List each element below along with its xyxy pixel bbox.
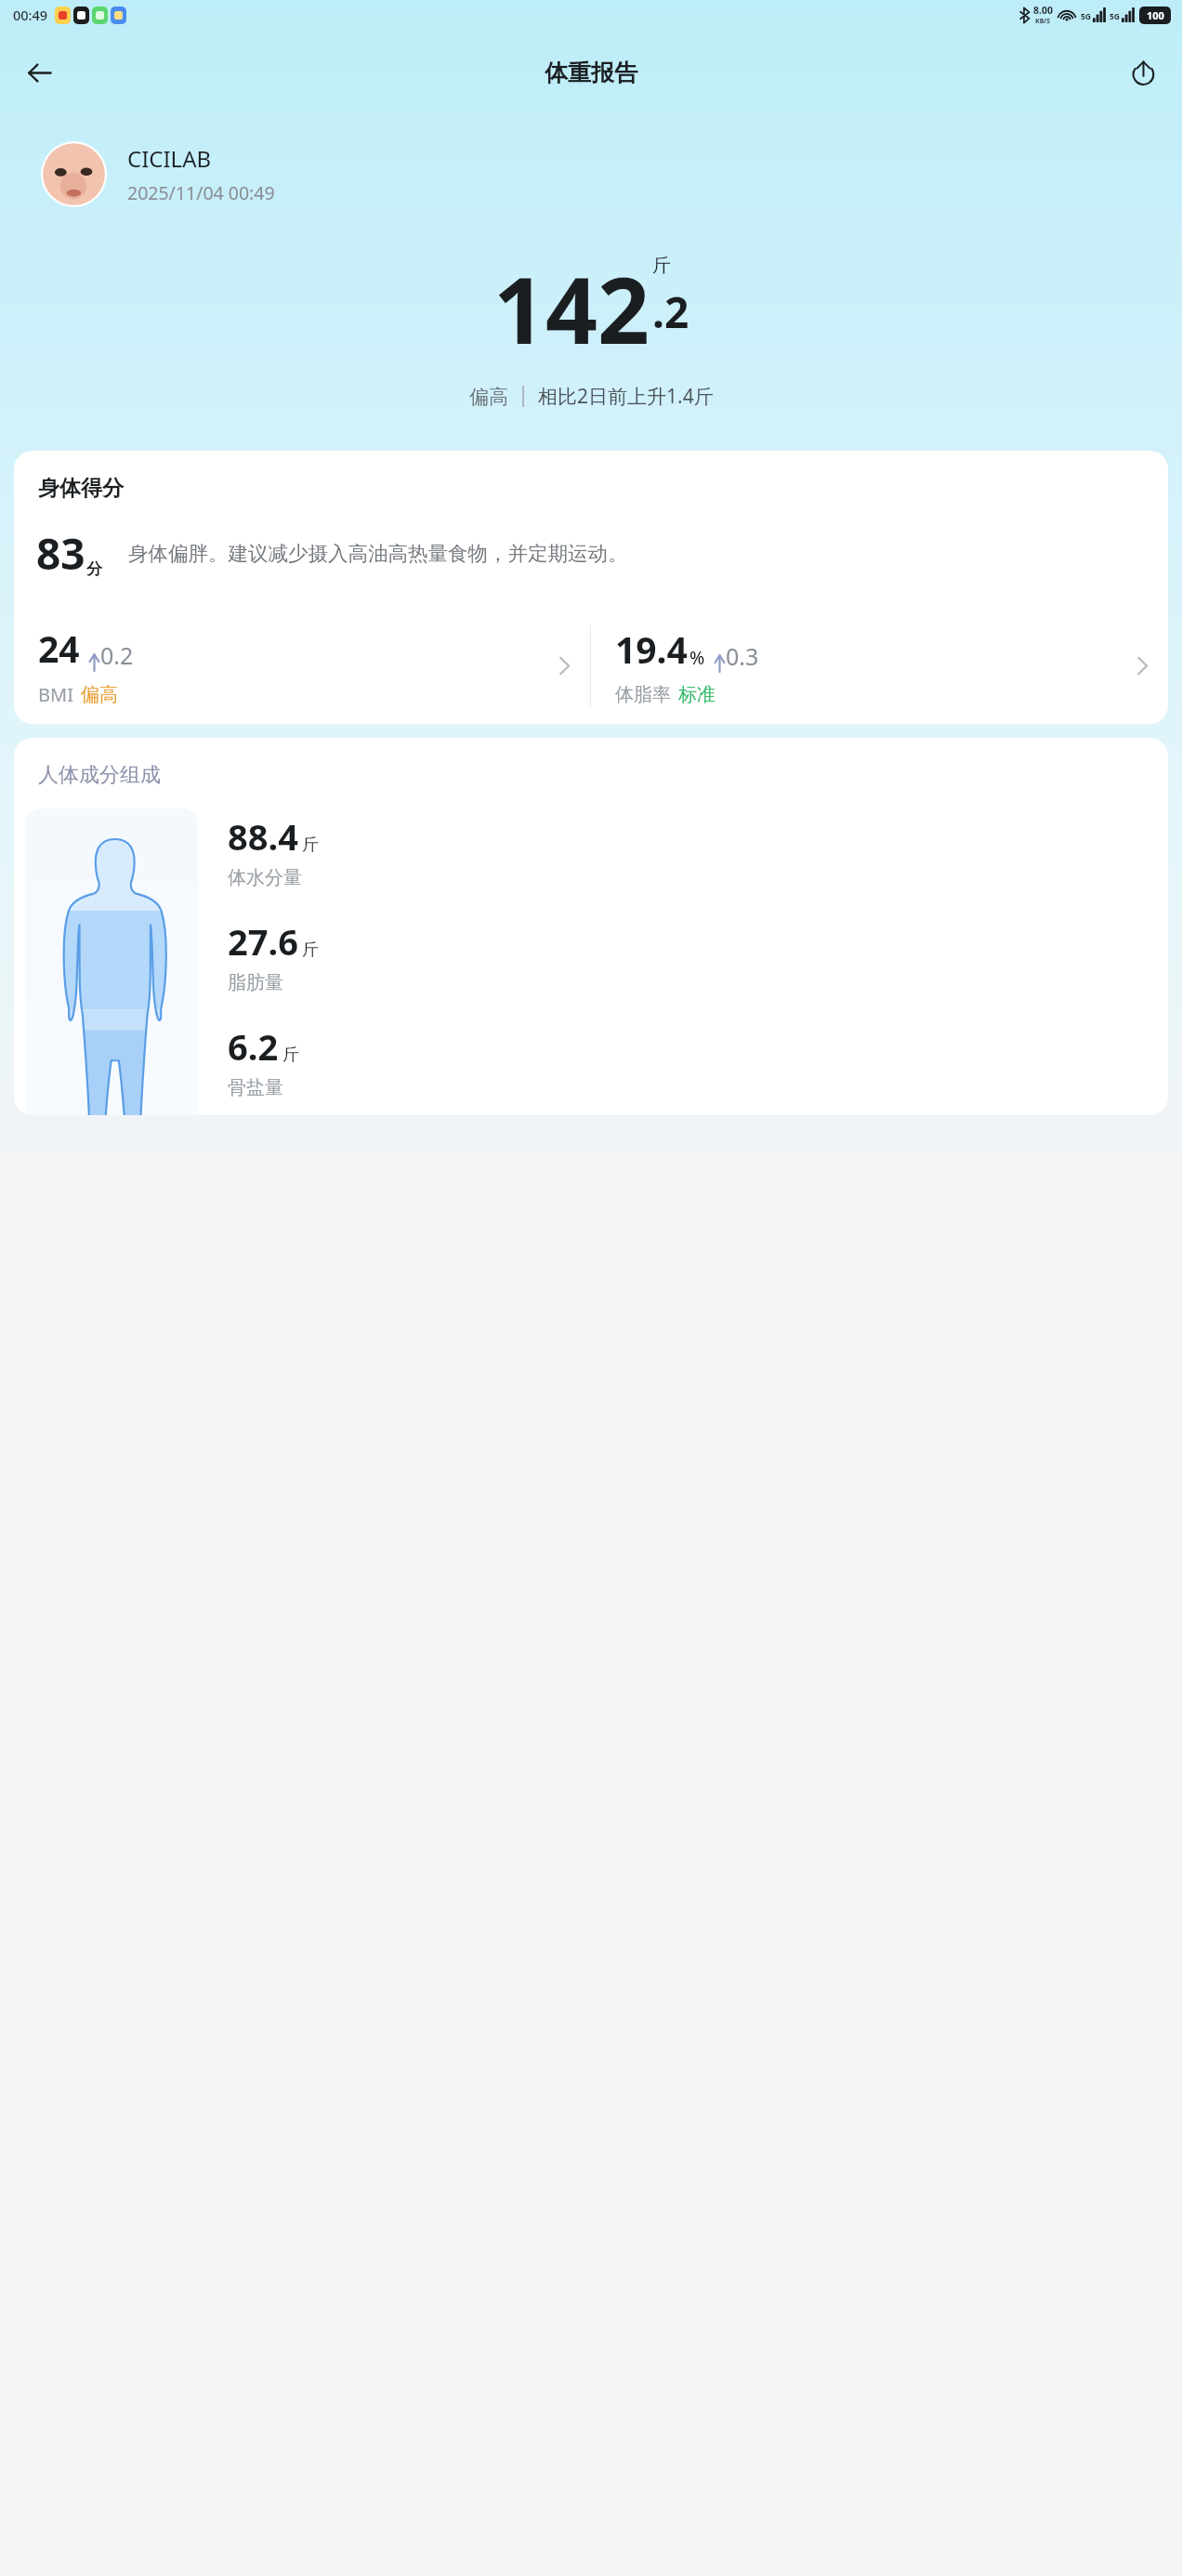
button[interactable]: 27.6 bbox=[228, 917, 319, 994]
staticText: 分 bbox=[86, 559, 102, 579]
staticText: 142 bbox=[493, 246, 650, 370]
staticText: 2025/11/04 00:49 bbox=[127, 180, 275, 205]
staticText: 体水分量 bbox=[228, 866, 302, 889]
staticText: .2 bbox=[652, 283, 689, 341]
staticText: 斤 bbox=[652, 254, 671, 277]
staticText: 人体成分组成 bbox=[38, 762, 161, 788]
staticText: 100 bbox=[1147, 8, 1164, 22]
staticText: 体重报告 bbox=[545, 59, 637, 87]
staticText: 27.6 bbox=[228, 917, 298, 966]
staticText: 8.00 bbox=[1033, 4, 1053, 17]
button[interactable]: 24 bbox=[14, 611, 590, 720]
button[interactable]: CICILAB bbox=[41, 141, 1182, 207]
staticText: 0.3 bbox=[726, 640, 759, 672]
staticText: 00:49 bbox=[13, 6, 48, 24]
button[interactable]: 88.4 bbox=[228, 812, 319, 889]
staticText: 24 bbox=[38, 624, 80, 673]
staticText: 身体偏胖。建议减少摄入高油高热量食物，并定期运动。 bbox=[128, 541, 628, 566]
staticText: 斤 bbox=[282, 1045, 299, 1066]
staticText: 偏高 bbox=[81, 683, 118, 706]
staticText: 骨盐量 bbox=[228, 1076, 283, 1099]
staticText: % bbox=[689, 646, 705, 670]
staticText: 体脂率 bbox=[615, 683, 671, 706]
staticText: 19.4 bbox=[615, 624, 688, 674]
staticText: 脂肪量 bbox=[228, 971, 283, 994]
staticText: 相比2日前上升1.4斤 bbox=[538, 383, 714, 410]
staticText: BMI bbox=[38, 682, 73, 707]
staticText: 身体得分 bbox=[38, 475, 124, 502]
staticText: 83 bbox=[36, 524, 85, 583]
staticText: 6.2 bbox=[228, 1022, 279, 1071]
staticText: 0.2 bbox=[100, 639, 134, 671]
staticText: 斤 bbox=[302, 835, 319, 856]
staticText: 88.4 bbox=[228, 812, 298, 861]
staticText: CICILAB bbox=[127, 143, 212, 174]
button[interactable]: Back bbox=[13, 46, 65, 99]
staticText: 斤 bbox=[302, 940, 319, 961]
staticText: 5G bbox=[1110, 11, 1121, 22]
button[interactable]: 6.2 bbox=[228, 1022, 299, 1099]
button[interactable]: Share bbox=[1117, 46, 1169, 99]
staticText: 5G bbox=[1081, 11, 1092, 22]
button[interactable]: 19.4 bbox=[591, 611, 1168, 720]
staticText: 偏高 bbox=[469, 385, 508, 409]
staticText: 标准 bbox=[678, 683, 716, 706]
staticText: KB/S bbox=[1035, 17, 1051, 26]
